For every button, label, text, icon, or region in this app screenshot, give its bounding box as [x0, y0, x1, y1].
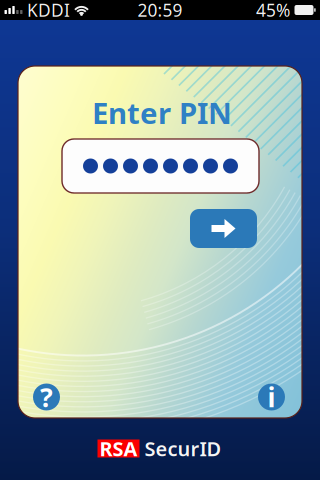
button[interactable]: Help — [33, 383, 60, 410]
staticText: KDDI — [27, 0, 70, 21]
staticText: i — [267, 379, 275, 415]
staticText: 20:59 — [137, 0, 182, 21]
staticText: 45% — [256, 0, 290, 21]
button[interactable]: Submit PIN — [190, 209, 257, 248]
staticText: ? — [40, 379, 53, 415]
button[interactable]: Information — [258, 383, 285, 410]
staticText: Enter PIN — [92, 93, 232, 132]
staticText: SecurID — [144, 435, 221, 462]
staticText: RSA — [99, 435, 137, 462]
